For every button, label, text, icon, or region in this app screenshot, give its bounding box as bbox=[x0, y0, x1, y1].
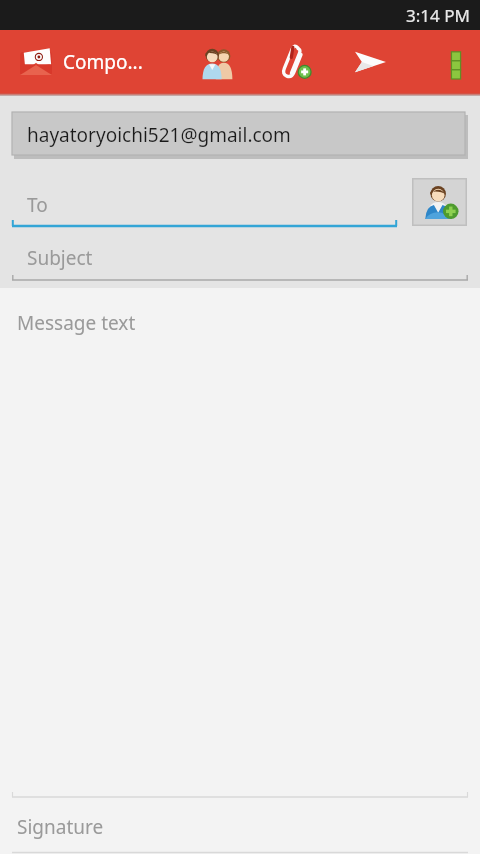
button[interactable]: Pick contact bbox=[412, 178, 467, 226]
button[interactable]: To bbox=[12, 182, 397, 228]
button[interactable]: Send bbox=[340, 30, 400, 93]
staticText: To bbox=[27, 192, 48, 218]
staticText: Compo... bbox=[63, 49, 143, 75]
staticText: Signature bbox=[17, 814, 104, 840]
button[interactable]: Signature bbox=[0, 800, 480, 854]
button[interactable]: Attach file bbox=[264, 30, 324, 93]
button[interactable]: hayatoryoichi521@gmail.com bbox=[12, 112, 468, 159]
staticText: Message text bbox=[17, 310, 136, 336]
button[interactable]: Add contacts bbox=[188, 30, 248, 93]
button[interactable]: Compo... bbox=[0, 30, 180, 93]
button[interactable]: Message text bbox=[0, 288, 480, 792]
button[interactable]: Subject bbox=[12, 234, 468, 282]
staticText: Subject bbox=[27, 245, 93, 271]
staticText: hayatoryoichi521@gmail.com bbox=[27, 122, 291, 148]
button[interactable]: More options bbox=[432, 30, 480, 93]
staticText: 3:14 PM bbox=[406, 4, 470, 27]
